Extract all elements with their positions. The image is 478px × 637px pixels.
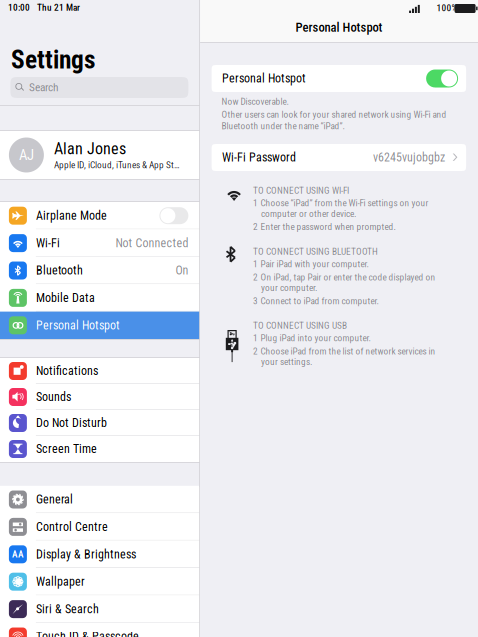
staticText: Touch ID & Passcode xyxy=(36,629,139,637)
button[interactable]: General xyxy=(0,486,199,513)
staticText: TO CONNECT USING BLUETOOTH xyxy=(253,246,378,257)
staticText: Thu 21 Mar xyxy=(37,2,80,13)
button[interactable]: Wi-Fi xyxy=(0,229,199,257)
staticText: Wi-Fi xyxy=(36,236,60,250)
staticText: v6245vujobgbz xyxy=(373,150,445,165)
button[interactable]: Do Not Disturb xyxy=(0,410,199,436)
staticText: 100% xyxy=(437,2,458,13)
staticText: Wi-Fi Password xyxy=(222,150,296,165)
staticText: Display & Brightness xyxy=(36,547,136,561)
staticText: Enter the password when prompted. xyxy=(261,221,396,232)
staticText: 1 xyxy=(253,198,258,209)
button[interactable]: AA xyxy=(0,541,199,568)
staticText: TO CONNECT USING USB xyxy=(253,320,347,331)
staticText: Search xyxy=(29,81,58,94)
staticText: AJ xyxy=(19,146,34,164)
staticText: 3 xyxy=(253,296,258,307)
staticText: Connect to iPad from computer. xyxy=(261,296,379,307)
staticText: Alan Jones xyxy=(54,139,126,158)
staticText: 2 xyxy=(253,272,258,283)
staticText: Choose “iPad” from the Wi-Fi settings on… xyxy=(261,198,429,209)
staticText: Mobile Data xyxy=(36,291,95,305)
staticText: Sounds xyxy=(36,390,71,404)
button[interactable]: AJ xyxy=(0,131,199,179)
staticText: On xyxy=(175,263,188,278)
staticText: Bluetooth under the name “iPad”. xyxy=(222,121,345,132)
staticText: On iPad, tap Pair or enter the code disp… xyxy=(261,272,436,283)
staticText: Choose iPad from the list of network ser… xyxy=(261,346,436,357)
staticText: Other users can look for your shared net… xyxy=(222,109,447,120)
staticText: 10:00 xyxy=(8,2,30,13)
button[interactable]: Wallpaper xyxy=(0,568,199,595)
staticText: Plug iPad into your computer. xyxy=(261,333,371,344)
staticText: 2 xyxy=(253,346,258,357)
staticText: General xyxy=(36,492,73,507)
staticText: your settings. xyxy=(261,356,312,367)
button[interactable]: Control Centre xyxy=(0,513,199,541)
staticText: TO CONNECT USING WI-FI xyxy=(253,185,349,196)
staticText: your computer. xyxy=(261,282,317,293)
staticText: Settings xyxy=(11,45,96,75)
button[interactable]: Siri & Search xyxy=(0,595,199,623)
staticText: computer or other device. xyxy=(261,208,356,219)
button[interactable]: Search xyxy=(10,77,188,98)
button[interactable]: Screen Time xyxy=(0,436,199,462)
staticText: Screen Time xyxy=(36,442,97,456)
staticText: AA xyxy=(12,549,24,560)
button[interactable]: Sounds xyxy=(0,384,199,410)
staticText: Do Not Disturb xyxy=(36,416,107,430)
staticText: Control Centre xyxy=(36,520,108,534)
staticText: 2 xyxy=(253,221,258,232)
button[interactable]: Wi-Fi Password xyxy=(212,144,466,171)
button[interactable]: Personal Hotspot xyxy=(0,312,199,339)
staticText: Wallpaper xyxy=(36,575,85,589)
button[interactable]: Mobile Data xyxy=(0,284,199,312)
staticText: Personal Hotspot xyxy=(296,20,383,35)
button[interactable]: Notifications xyxy=(0,358,199,384)
staticText: Not Connected xyxy=(115,236,188,250)
staticText: Apple ID, iCloud, iTunes & App St… xyxy=(54,160,180,171)
staticText: Bluetooth xyxy=(36,263,83,278)
staticText: 1 xyxy=(253,259,258,270)
staticText: Personal Hotspot xyxy=(222,71,306,86)
staticText: Siri & Search xyxy=(36,602,99,616)
button[interactable]: Bluetooth xyxy=(0,257,199,284)
button[interactable]: Airplane Mode xyxy=(0,202,199,229)
staticText: Airplane Mode xyxy=(36,209,107,223)
staticText: Personal Hotspot xyxy=(36,318,120,332)
staticText: 1 xyxy=(253,333,258,344)
button[interactable]: Personal Hotspot xyxy=(212,65,466,92)
staticText: Notifications xyxy=(36,364,98,378)
button[interactable]: Touch ID & Passcode xyxy=(0,623,199,637)
staticText: Now Discoverable. xyxy=(222,96,289,107)
staticText: Pair iPad with your computer. xyxy=(261,259,369,270)
